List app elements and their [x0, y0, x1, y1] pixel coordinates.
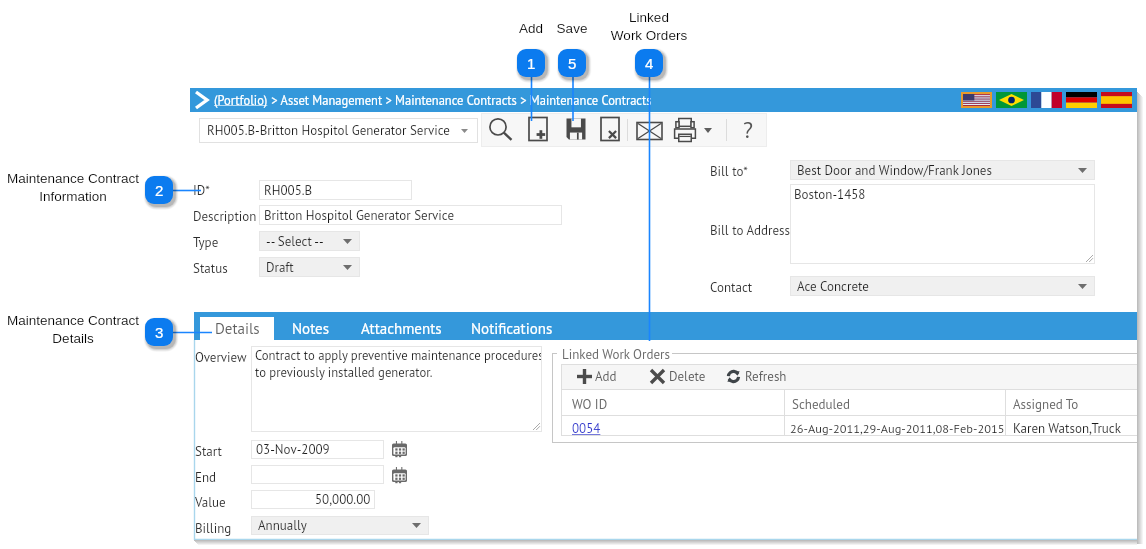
button[interactable]: 50,000.00 [251, 490, 375, 509]
staticText: Type [193, 234, 293, 251]
button[interactable]: RH005.B [259, 180, 412, 200]
staticText: Overview [195, 349, 255, 366]
staticText: End [195, 469, 255, 486]
button[interactable]: 0054 [572, 420, 601, 437]
staticText: 26-Aug-2011,29-Aug-2011,08-Feb-2015 [790, 420, 1005, 436]
button[interactable]: Add [577, 364, 617, 389]
button[interactable] [251, 465, 384, 484]
button[interactable]: Delete [594, 115, 626, 143]
staticText: 03-Nov-2009 [256, 441, 330, 458]
staticText: Maintenance Contract Details [4, 313, 142, 346]
button[interactable]: Pick date [390, 439, 408, 457]
staticText: Status [193, 260, 293, 277]
staticText: Save [542, 21, 602, 36]
staticText: Value [195, 494, 255, 511]
staticText: 3 [155, 324, 164, 341]
staticText: ? [743, 115, 754, 143]
button[interactable]: Callout 2 [145, 176, 173, 204]
staticText: Notifications [471, 319, 553, 338]
staticText: Bill to Address [710, 222, 800, 239]
staticText: Linked Work Orders [589, 10, 709, 43]
button[interactable]: Delete [650, 364, 706, 389]
staticText: Best Door and Window/Frank Jones [797, 162, 992, 179]
button[interactable]: Email [633, 117, 666, 145]
button[interactable]: Notifications [467, 316, 557, 340]
button[interactable]: Pick date [390, 465, 408, 483]
staticText: Add [595, 368, 617, 385]
staticText: Ace Concrete [797, 278, 869, 295]
button[interactable]: Annually [251, 516, 429, 535]
button[interactable]: Ace Concrete [790, 276, 1095, 296]
button[interactable]: Callout 1 [517, 49, 545, 77]
staticText: 4 [645, 55, 654, 72]
button[interactable]: Refresh [726, 364, 787, 389]
button[interactable]: French [1031, 92, 1062, 108]
button[interactable]: RH005.B-Britton Hospitol Generator Servi… [199, 118, 478, 143]
button[interactable]: (Portfolio) [214, 92, 268, 108]
staticText: -- Select -- [266, 233, 324, 250]
staticText: Notes [292, 319, 329, 338]
button[interactable]: Print [668, 116, 702, 144]
button[interactable]: Callout 3 [145, 318, 173, 346]
staticText: ID* [193, 182, 293, 199]
button[interactable]: Print options [701, 117, 715, 143]
button[interactable]: Attachments [356, 316, 446, 340]
staticText: 2 [155, 182, 164, 199]
staticText: 5 [568, 55, 577, 72]
staticText: Britton Hospitol Generator Service [264, 207, 455, 224]
button[interactable]: Help [735, 115, 761, 143]
button[interactable]: Britton Hospitol Generator Service [259, 205, 562, 225]
button[interactable]: Portuguese [996, 92, 1027, 108]
button[interactable]: Notes [286, 316, 334, 340]
staticText: RH005.B-Britton Hospitol Generator Servi… [207, 122, 450, 139]
staticText: (Portfolio) [214, 92, 268, 108]
button[interactable]: -- Select -- [259, 231, 360, 251]
staticText: 0054 [572, 420, 601, 437]
staticText: Add [501, 21, 561, 36]
button[interactable]: Details [200, 317, 274, 341]
staticText: Contract to apply preventive maintenance… [255, 347, 542, 381]
staticText: Draft [266, 259, 294, 276]
button[interactable]: Save [560, 115, 592, 143]
button[interactable]: Add [522, 115, 554, 143]
staticText: Karen Watson,Truck [1013, 420, 1121, 437]
button[interactable]: Spanish [1101, 92, 1132, 108]
staticText: RH005.B [264, 182, 313, 199]
button[interactable]: 03-Nov-2009 [251, 440, 384, 459]
staticText: > Asset Management > Maintenance Contrac… [268, 92, 652, 108]
staticText: Maintenance Contract Information [4, 171, 142, 204]
button[interactable]: Boston-1458 [790, 184, 1095, 264]
button[interactable]: German [1066, 92, 1097, 108]
staticText: Start [195, 443, 255, 460]
staticText: 50,000.00 [315, 491, 371, 508]
staticText: Linked Work Orders [562, 346, 670, 363]
staticText: WO ID [572, 396, 608, 413]
staticText: Details [215, 319, 260, 338]
staticText: Annually [258, 517, 307, 534]
button[interactable]: Contract to apply preventive maintenance… [251, 346, 542, 432]
staticText: Refresh [745, 368, 787, 385]
staticText: Attachments [361, 319, 442, 338]
staticText: Bill to* [710, 163, 800, 180]
staticText: Contact [710, 279, 800, 296]
button[interactable]: English [961, 92, 992, 108]
staticText: Scheduled [792, 396, 850, 413]
staticText: Description [193, 208, 293, 225]
staticText: Delete [669, 368, 706, 385]
staticText: 1 [527, 55, 536, 72]
staticText: Boston-1458 [794, 186, 866, 203]
button[interactable]: Best Door and Window/Frank Jones [790, 160, 1095, 180]
staticText: Assigned To [1013, 396, 1079, 413]
button[interactable]: Draft [259, 257, 360, 277]
button[interactable]: Callout 4 [635, 49, 663, 77]
button[interactable]: Callout 5 [558, 49, 586, 77]
button[interactable]: Search [484, 116, 518, 144]
staticText: Billing [195, 520, 255, 537]
